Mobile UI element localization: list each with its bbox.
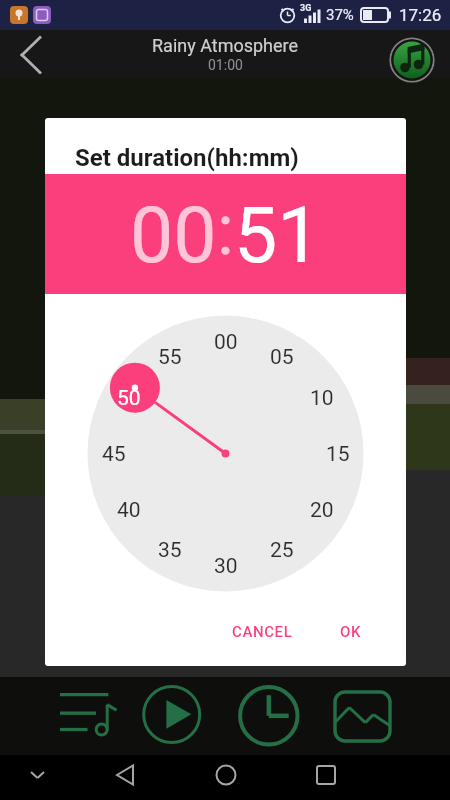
staticText: 01:00 (208, 57, 243, 73)
staticText: Set duration(hh:mm) (75, 144, 299, 172)
button[interactable] (0, 30, 56, 78)
staticText: 15 (326, 442, 350, 467)
button[interactable]: 51 (234, 191, 321, 281)
button[interactable] (238, 685, 300, 747)
staticText: 25 (270, 538, 294, 563)
staticText: OK (340, 623, 362, 641)
button[interactable]: 20 (300, 496, 344, 524)
staticText: 10 (310, 386, 334, 411)
button[interactable]: 50 (107, 384, 151, 412)
staticText: 05 (270, 345, 294, 370)
staticText: 3G (300, 3, 312, 14)
button[interactable] (309, 763, 343, 797)
staticText: 50 (117, 386, 141, 411)
button[interactable]: 45 (92, 440, 136, 468)
staticText: CANCEL (232, 623, 293, 641)
staticText: : (217, 189, 234, 271)
staticText: 35 (158, 538, 182, 563)
staticText: 55 (158, 345, 182, 370)
staticText: 20 (310, 498, 334, 523)
button[interactable]: 00 (204, 328, 248, 356)
button[interactable]: 30 (204, 552, 248, 580)
button[interactable]: 15 (316, 440, 360, 468)
button[interactable] (209, 763, 243, 797)
button[interactable] (52, 686, 120, 742)
staticText: 37% (326, 6, 354, 24)
staticText: 45 (102, 442, 126, 467)
staticText: Rainy Atmosphere (152, 35, 299, 56)
button[interactable]: OK (323, 615, 379, 649)
button[interactable]: 35 (148, 536, 192, 564)
button[interactable]: 40 (107, 496, 151, 524)
button[interactable]: 55 (148, 343, 192, 371)
button[interactable]: 10 (300, 384, 344, 412)
staticText: 00 (214, 330, 238, 355)
button[interactable]: 25 (260, 536, 304, 564)
button[interactable] (389, 37, 435, 83)
staticText: 40 (117, 498, 141, 523)
button[interactable] (330, 687, 394, 745)
button[interactable]: 00 (130, 191, 217, 281)
button[interactable] (108, 763, 142, 797)
button[interactable]: 05 (260, 343, 304, 371)
staticText: 17:26 (399, 5, 442, 25)
button[interactable] (142, 685, 202, 745)
staticText: 30 (214, 554, 238, 579)
button[interactable]: CANCEL (217, 615, 307, 649)
